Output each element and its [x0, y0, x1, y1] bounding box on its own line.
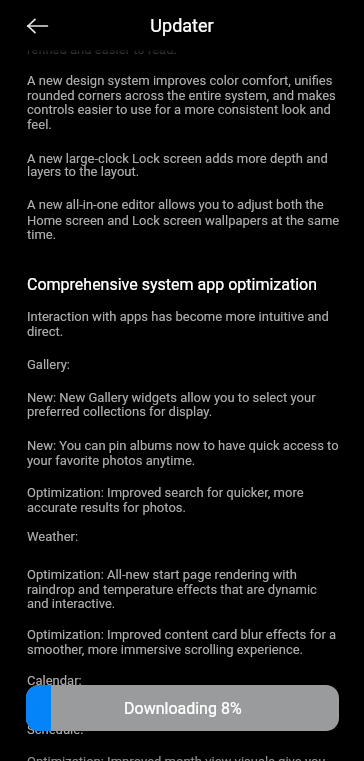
- staticText: Interaction with apps has become more in…: [27, 309, 329, 324]
- staticText: preferred collections for display.: [27, 404, 213, 419]
- staticText: Optimization: Improved search for quicke…: [27, 485, 304, 500]
- staticText: your favorite photos anytime.: [27, 453, 196, 468]
- staticText: accurate results for photos.: [27, 500, 186, 515]
- staticText: time.: [27, 227, 57, 242]
- staticText: feel.: [27, 117, 52, 132]
- staticText: Gallery:: [27, 357, 70, 372]
- staticText: Optimization: Improved content card blur…: [27, 627, 337, 642]
- staticText: A new large-clock Lock screen adds more …: [27, 151, 328, 166]
- staticText: Optimization: All-new start page renderi…: [27, 567, 297, 582]
- staticText: raindrop and temperature effects that ar…: [27, 582, 317, 597]
- staticText: Home screen and Lock screen wallpapers a…: [27, 213, 340, 228]
- button[interactable]: Downloading 8%: [26, 685, 339, 731]
- staticText: Optimization: Improved month view visual…: [27, 754, 326, 761]
- staticText: New: You can pin albums now to have quic…: [27, 438, 339, 453]
- staticText: smoother, more immersive scrolling exper…: [27, 642, 304, 657]
- staticText: Calendar:: [27, 673, 82, 688]
- staticText: A new all-in-one editor allows you to ad…: [27, 197, 324, 212]
- staticText: rounded corners across the entire system…: [27, 88, 336, 103]
- button[interactable]: Back: [18, 6, 58, 46]
- staticText: and interactive.: [27, 596, 116, 611]
- staticText: refined and easier to read.: [27, 42, 177, 57]
- staticText: New: New Gallery widgets allow you to se…: [27, 390, 316, 405]
- staticText: controls easier to use for a more consis…: [27, 102, 331, 117]
- staticText: direct.: [27, 324, 64, 339]
- staticText: New: Added a colorful new layout for the…: [27, 705, 334, 720]
- staticText: layers to the layout.: [27, 164, 140, 179]
- staticText: Downloading 8%: [124, 699, 242, 718]
- staticText: Schedule:: [27, 722, 84, 737]
- staticText: Weather:: [27, 529, 79, 544]
- staticText: Comprehensive system app optimization: [27, 275, 318, 294]
- staticText: Updater: [150, 15, 214, 36]
- staticText: A new design system improves color comfo…: [27, 73, 333, 88]
